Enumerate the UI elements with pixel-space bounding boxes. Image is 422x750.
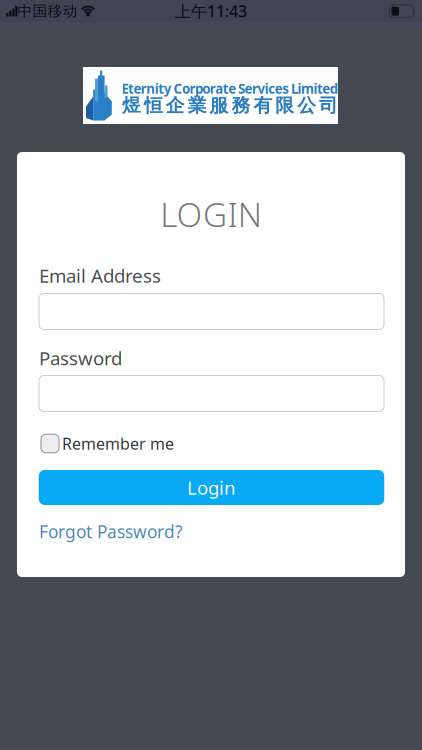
staticText: 有	[253, 94, 272, 117]
staticText: Eternity Corporate Services Limited	[121, 80, 338, 97]
staticText: Email Address	[39, 263, 161, 288]
button[interactable]	[39, 375, 384, 411]
staticText: Password	[39, 346, 122, 370]
staticText: 限	[275, 94, 294, 117]
staticText: 公	[297, 94, 316, 117]
staticText: 企	[166, 94, 185, 117]
staticText: Forgot Password?	[39, 520, 183, 543]
staticText: 煜	[122, 94, 141, 117]
staticText: 恒	[144, 94, 163, 117]
staticText: LOGIN	[160, 192, 262, 236]
staticText: Login	[187, 475, 236, 500]
staticText: 務	[231, 94, 250, 117]
button[interactable]: Remember me	[41, 433, 386, 454]
staticText: 服	[210, 94, 229, 117]
staticText: 中国移动	[17, 2, 77, 20]
staticText: 司	[319, 94, 338, 117]
button[interactable]	[39, 293, 384, 329]
staticText: 業	[188, 94, 207, 117]
staticText: 上午11:43	[175, 0, 247, 22]
button[interactable]: Login	[39, 470, 384, 505]
staticText: Remember me	[62, 433, 174, 454]
button[interactable]: Forgot Password?	[39, 520, 384, 543]
